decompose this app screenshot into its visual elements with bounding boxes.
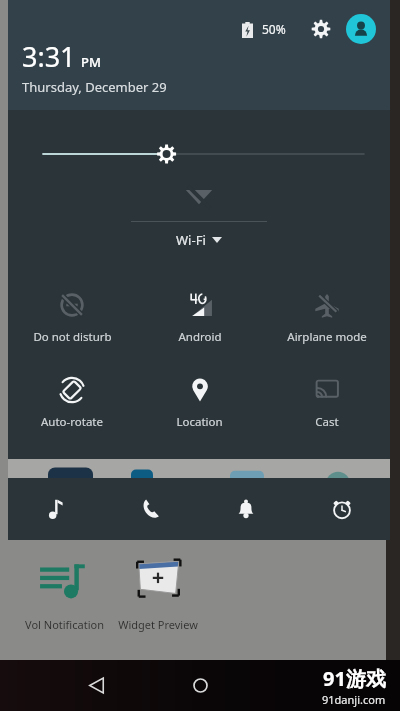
staticText: Auto-rotate: [41, 414, 103, 430]
button[interactable]: Home: [174, 660, 226, 711]
button[interactable]: Vol Notification: [18, 545, 110, 632]
staticText: Airplane mode: [287, 329, 367, 345]
button[interactable]: Widget Preview: [112, 545, 204, 632]
button[interactable]: Phone: [103, 478, 198, 540]
staticText: Location: [176, 414, 223, 430]
button[interactable]: User profile: [346, 14, 376, 44]
staticText: 3:31: [22, 38, 76, 75]
button[interactable]: Airplane mode: [263, 288, 390, 349]
button[interactable]: Back: [70, 660, 122, 711]
button[interactable]: Wi-Fi: [131, 182, 267, 249]
staticText: 91danji.com: [322, 692, 386, 707]
staticText: Do not disturb: [33, 329, 112, 345]
staticText: Thursday, December 29: [22, 78, 167, 96]
staticText: Wi-Fi: [176, 231, 206, 249]
staticText: Android: [178, 329, 222, 345]
staticText: Cast: [315, 414, 339, 430]
button[interactable]: Android: [136, 288, 263, 349]
button[interactable]: Settings: [304, 12, 338, 46]
staticText: Vol Notification: [25, 617, 104, 632]
staticText: PM: [81, 53, 101, 71]
staticText: 91游戏: [323, 665, 386, 692]
button[interactable]: Location: [136, 373, 263, 434]
button[interactable]: Music: [8, 478, 103, 540]
button[interactable]: Alarm: [294, 478, 390, 540]
button[interactable]: Notifications: [198, 478, 294, 540]
button[interactable]: Brightness: [8, 128, 390, 180]
button[interactable]: Cast: [263, 373, 390, 434]
button[interactable]: Auto-rotate: [8, 373, 136, 434]
button[interactable]: Do not disturb: [8, 288, 136, 349]
staticText: 50%: [262, 21, 286, 37]
button[interactable]: Battery charging 50 percent: [234, 16, 260, 42]
staticText: Widget Preview: [118, 617, 198, 632]
